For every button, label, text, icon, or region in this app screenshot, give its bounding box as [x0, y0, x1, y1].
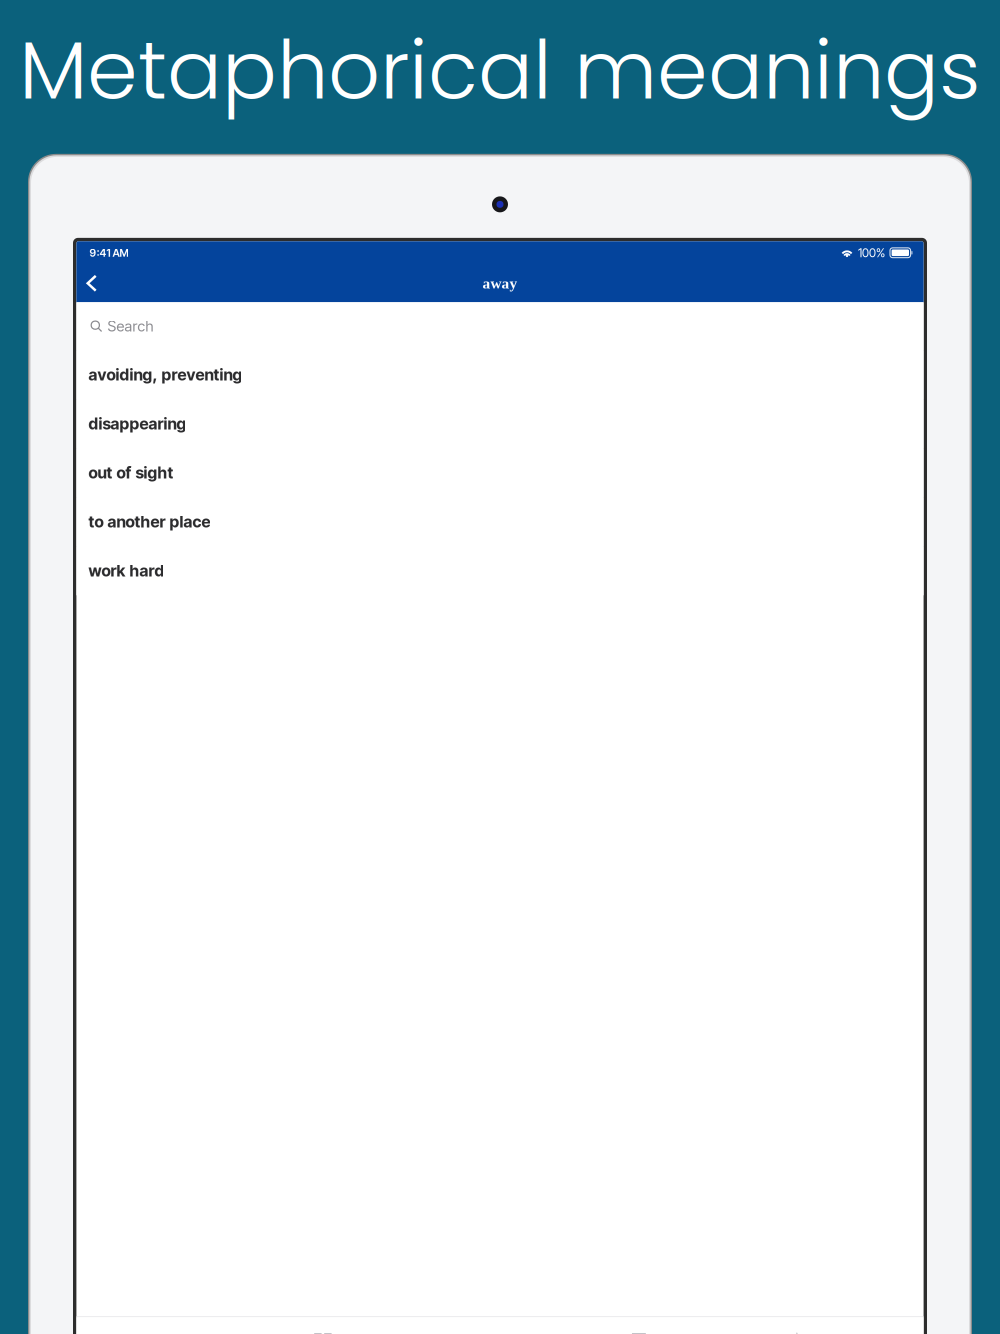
button[interactable]: disappearing — [76, 399, 924, 448]
button[interactable]: work hard — [76, 546, 924, 595]
button[interactable]: Meanings — [244, 1317, 402, 1334]
button[interactable]: avoiding, preventing — [76, 350, 924, 399]
button[interactable]: Back — [76, 265, 113, 302]
staticText: 100% — [858, 245, 885, 260]
staticText: out of sight — [88, 463, 173, 482]
staticText: away — [482, 275, 517, 292]
staticText: to another place — [88, 512, 210, 531]
button[interactable]: Search — [76, 302, 924, 350]
button[interactable]: out of sight — [76, 448, 924, 497]
staticText: disappearing — [88, 414, 186, 433]
staticText: Metaphorical meanings — [19, 13, 980, 127]
staticText: work hard — [88, 561, 164, 580]
staticText: Search — [107, 317, 153, 335]
staticText: avoiding, preventing — [88, 365, 242, 384]
button[interactable]: Expressions — [560, 1317, 718, 1334]
button[interactable]: to another place — [76, 497, 924, 546]
staticText: 9:41 AM — [89, 246, 128, 259]
